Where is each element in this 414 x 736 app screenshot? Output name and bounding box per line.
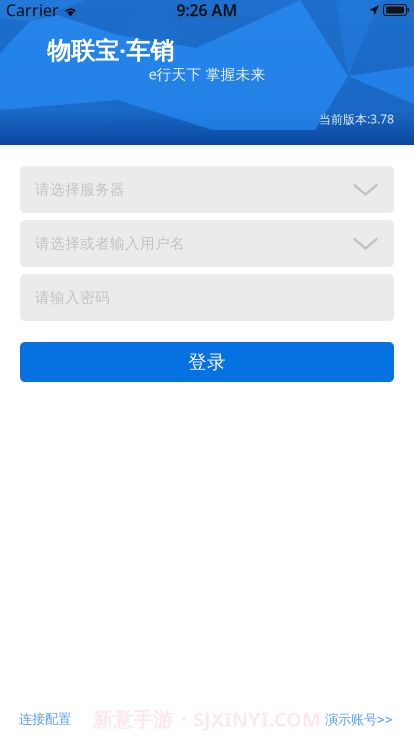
button[interactable]: 登录: [20, 342, 394, 382]
staticText: 当前版本:3.78: [319, 111, 394, 127]
button[interactable]: 请选择或者输入用户名: [20, 220, 394, 267]
staticText: 请输入密码: [35, 288, 110, 306]
button[interactable]: 连接配置: [19, 711, 71, 727]
button[interactable]: 演示账号>>: [325, 710, 393, 728]
staticText: 连接配置: [19, 711, 71, 727]
staticText: 登录: [188, 350, 226, 373]
staticText: 物联宝·车销: [47, 34, 174, 66]
staticText: 演示账号>>: [325, 710, 393, 728]
button[interactable]: 请选择服务器: [20, 166, 394, 213]
staticText: 请选择服务器: [35, 180, 125, 198]
button[interactable]: 请输入密码: [20, 274, 394, 321]
staticText: e行天下 掌握未来: [148, 64, 265, 84]
staticText: Carrier: [6, 0, 59, 21]
staticText: 新意手游・SJXINYI.COM: [93, 706, 321, 732]
staticText: 9:26 AM: [176, 0, 237, 21]
staticText: 请选择或者输入用户名: [35, 234, 185, 252]
